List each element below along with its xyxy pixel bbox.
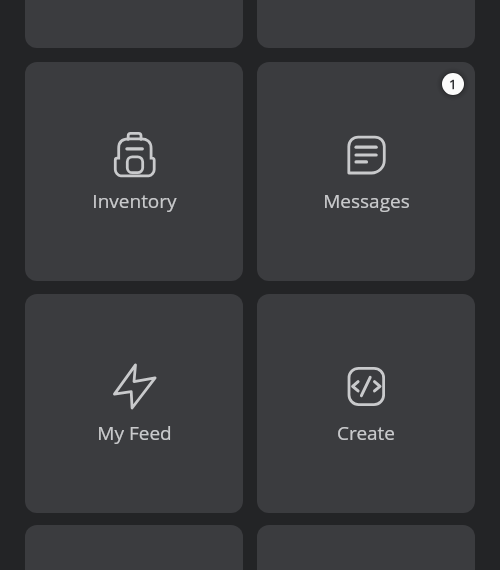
button[interactable]: My Feed bbox=[25, 294, 243, 513]
staticText: Inventory bbox=[92, 188, 177, 214]
staticText: Messages bbox=[323, 188, 410, 214]
button[interactable]: Inventory bbox=[25, 62, 243, 281]
button[interactable]: Messages bbox=[257, 62, 475, 281]
button[interactable]: Create bbox=[257, 294, 475, 513]
staticText: Create bbox=[337, 420, 395, 446]
staticText: 1 bbox=[449, 75, 457, 93]
staticText: My Feed bbox=[97, 420, 172, 446]
